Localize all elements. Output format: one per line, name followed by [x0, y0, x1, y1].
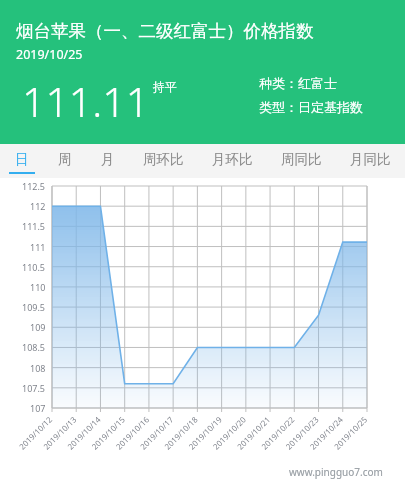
staticText: 类型：日定基指数	[259, 99, 363, 115]
button[interactable]: 月	[86, 144, 129, 178]
staticText: 月同比	[350, 151, 391, 168]
staticText: 种类：红富士	[259, 75, 337, 91]
button[interactable]: 月环比	[198, 144, 267, 178]
staticText: 月环比	[212, 151, 253, 168]
button[interactable]: 月同比	[336, 144, 405, 178]
staticText: 日	[15, 151, 29, 168]
button[interactable]: 周同比	[267, 144, 336, 178]
staticText: 烟台苹果（一、二级红富士）价格指数	[16, 20, 314, 42]
staticText: 月	[101, 151, 115, 168]
staticText: 周同比	[281, 151, 322, 168]
staticText: 111.11	[22, 73, 150, 129]
staticText: 持平	[153, 79, 177, 94]
button[interactable]: 周	[43, 144, 86, 178]
button[interactable]: 周环比	[129, 144, 198, 178]
staticText: 周	[58, 151, 72, 168]
staticText: 2019/10/25	[16, 46, 83, 63]
staticText: 周环比	[143, 151, 184, 168]
button[interactable]: 日	[0, 144, 43, 178]
